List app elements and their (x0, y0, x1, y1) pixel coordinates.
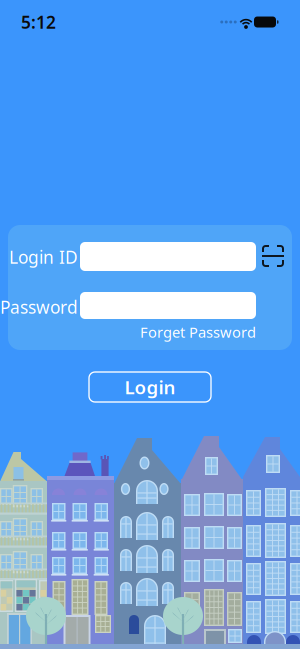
button[interactable]: Forget Password (136, 324, 256, 340)
staticText: Forget Password (140, 322, 256, 342)
staticText: Password (0, 295, 78, 318)
staticText: Login ID (9, 245, 78, 268)
staticText: Login (124, 375, 175, 399)
button[interactable]: Login (89, 372, 211, 402)
staticText: 5:12 (21, 10, 56, 33)
button[interactable]: Scan (258, 241, 288, 271)
